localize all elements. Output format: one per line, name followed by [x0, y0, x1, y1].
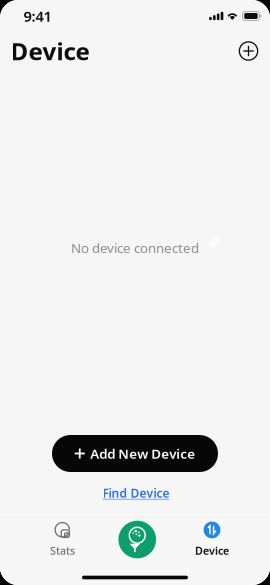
- staticText: 9:41: [23, 6, 51, 26]
- staticText: No device connected: [71, 239, 199, 257]
- button[interactable]: Stats: [32, 523, 92, 555]
- button[interactable]: Add device: [231, 34, 265, 68]
- button[interactable]: Find Device: [91, 484, 181, 502]
- button[interactable]: Device: [182, 523, 242, 555]
- staticText: Find Device: [102, 485, 169, 501]
- button[interactable]: Start a round: [111, 521, 163, 558]
- staticText: Device: [195, 543, 229, 558]
- staticText: Add New Device: [90, 445, 195, 462]
- staticText: Stats: [50, 543, 75, 558]
- staticText: Device: [10, 35, 89, 67]
- button[interactable]: Add New Device: [52, 435, 218, 472]
